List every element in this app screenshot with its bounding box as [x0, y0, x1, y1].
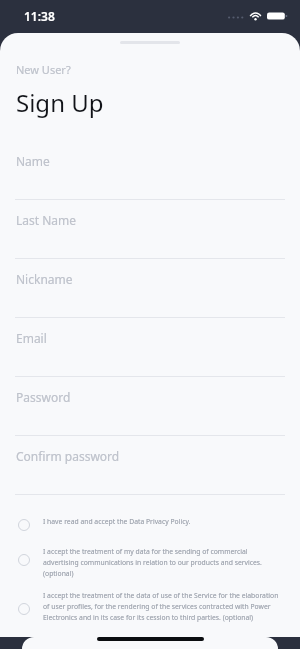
button[interactable]: Name [0, 141, 300, 200]
staticText: Sign Up [16, 86, 104, 119]
staticText: Password [16, 389, 71, 405]
staticText: Email [16, 330, 47, 346]
button[interactable]: Accept consent [16, 591, 284, 622]
staticText: Last Name [16, 212, 77, 228]
staticText: I accept the treatment of my data for th… [43, 547, 284, 578]
button[interactable]: Accept consent [16, 547, 284, 578]
staticText: Name [16, 153, 50, 169]
button[interactable]: Accept consent [16, 517, 284, 533]
staticText: I have read and accept the Data Privacy … [43, 517, 284, 526]
staticText: I accept the treatment of the data of us… [43, 591, 284, 622]
button[interactable]: Last Name [0, 200, 300, 259]
staticText: 11:38 [24, 8, 55, 24]
staticText: New User? [16, 62, 71, 77]
other: Accept consent [16, 517, 32, 533]
staticText: Confirm password [16, 448, 120, 464]
button[interactable]: Password [0, 377, 300, 436]
staticText: Nickname [16, 271, 73, 287]
other: Accept consent [16, 552, 32, 568]
button[interactable]: Email [0, 318, 300, 377]
button[interactable]: Nickname [0, 259, 300, 318]
button[interactable]: Confirm password [0, 436, 300, 495]
other: Accept consent [16, 601, 32, 617]
